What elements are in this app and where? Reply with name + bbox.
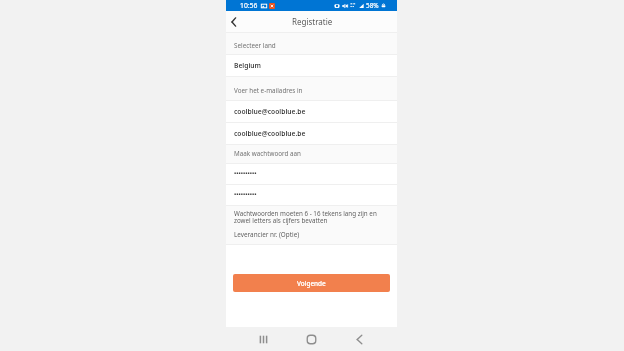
button[interactable]: •••••••••• [226, 164, 397, 184]
staticText: coolblue@coolblue.be [234, 129, 306, 138]
staticText: Registratie [292, 16, 333, 27]
button[interactable]: Volgende [233, 274, 390, 292]
button[interactable]: Maak wachtwoord aan [226, 145, 397, 163]
button[interactable]: Voer het e-mailadres in [226, 77, 397, 100]
staticText: Voer het e-mailadres in [234, 86, 303, 95]
staticText: 10:56 [240, 1, 258, 10]
button[interactable]: coolblue@coolblue.be [226, 123, 397, 144]
staticText: Volgende [297, 279, 326, 288]
button[interactable]: Belgium [226, 55, 397, 76]
button[interactable]: coolblue@coolblue.be [226, 101, 397, 122]
staticText: coolblue@coolblue.be [234, 107, 306, 116]
staticText: Maak wachtwoord aan [234, 149, 301, 158]
staticText: •••••••••• [234, 190, 257, 198]
button[interactable]: Selecteer land [226, 33, 397, 54]
button[interactable]: Back [226, 14, 242, 30]
staticText: Wachtwoorden moeten 6 - 16 tekens lang z… [234, 209, 391, 224]
button[interactable]: Recent apps [252, 328, 274, 350]
button[interactable]: Back [348, 328, 370, 350]
staticText: Belgium [234, 61, 261, 70]
staticText: Selecteer land [234, 41, 276, 50]
staticText: 58% [366, 1, 379, 10]
button[interactable]: Leverancier nr. (Optie) [234, 230, 300, 239]
button[interactable]: •••••••••• [226, 185, 397, 205]
button[interactable]: Home [300, 328, 322, 350]
staticText: •••••••••• [234, 169, 257, 177]
